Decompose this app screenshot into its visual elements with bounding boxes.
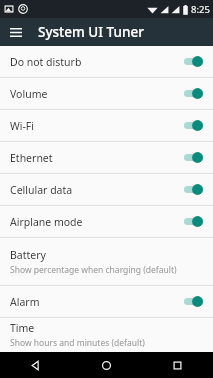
staticText: Time <box>10 321 35 335</box>
staticText: Wi-Fi <box>10 119 184 133</box>
staticText: Volume <box>10 87 184 101</box>
staticText: Ethernet <box>10 151 184 165</box>
button[interactable]: Volume <box>0 78 213 109</box>
staticText: Battery <box>10 248 46 262</box>
button[interactable]: Ethernet <box>0 142 213 173</box>
staticText: System UI Tuner <box>38 23 144 41</box>
button[interactable]: Time <box>0 318 213 352</box>
staticText: Show percentage when charging (default) <box>10 264 177 276</box>
button[interactable]: Wi-Fi <box>0 110 213 141</box>
button[interactable]: Airplane mode <box>0 206 213 237</box>
button[interactable]: Do not disturb <box>0 46 213 77</box>
button[interactable]: Cellular data <box>0 174 213 205</box>
staticText: Cellular data <box>10 183 184 197</box>
staticText: Alarm <box>10 295 184 309</box>
staticText: 8:25 <box>191 3 210 16</box>
staticText: Show hours and minutes (default) <box>10 337 145 349</box>
button[interactable]: Open navigation drawer <box>5 21 27 43</box>
button[interactable]: Home <box>71 352 142 378</box>
staticText: Airplane mode <box>10 215 184 229</box>
staticText: Do not disturb <box>10 55 184 69</box>
button[interactable]: Back <box>0 352 71 378</box>
button[interactable]: Battery <box>0 238 213 285</box>
button[interactable]: Alarm <box>0 286 213 317</box>
button[interactable]: Recent apps <box>142 352 213 378</box>
